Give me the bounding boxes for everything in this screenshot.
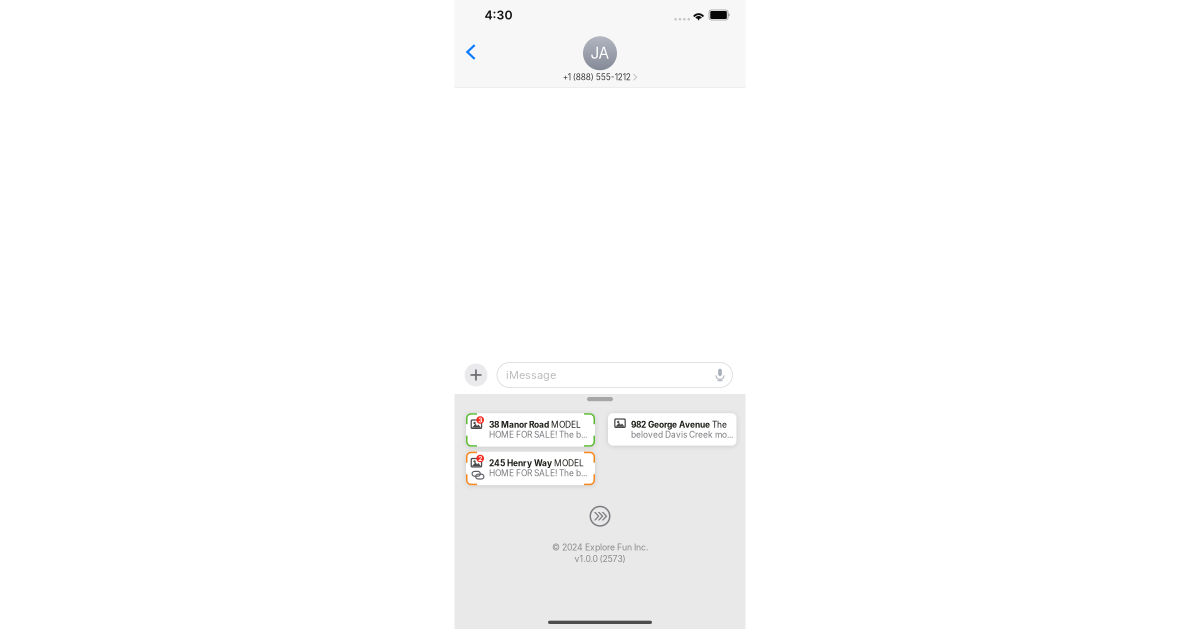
staticText: 38 Manor Road MODEL bbox=[489, 420, 581, 430]
staticText: 982 George Avenue The bbox=[631, 420, 727, 430]
button[interactable]: 3 bbox=[466, 413, 595, 447]
button[interactable]: Back bbox=[459, 30, 482, 59]
staticText: 2 bbox=[478, 454, 482, 463]
staticText: v1.0.0 (2573) bbox=[574, 554, 625, 564]
staticText: HOME FOR SALE! The b... bbox=[489, 468, 587, 478]
button[interactable]: +1 (888) 555-1212 bbox=[563, 73, 637, 82]
button[interactable]: Explore Fun bbox=[588, 505, 611, 528]
button[interactable]: iMessage bbox=[497, 362, 732, 387]
button[interactable]: 982 George Avenue The bbox=[608, 413, 736, 446]
staticText: HOME FOR SALE! The b... bbox=[489, 430, 587, 440]
staticText: beloved Davis Creek mo... bbox=[631, 430, 733, 440]
staticText: 245 Henry Way MODEL bbox=[489, 458, 584, 468]
staticText: iMessage bbox=[506, 368, 556, 382]
staticText: JA bbox=[590, 44, 609, 63]
staticText: +1 (888) 555-1212 bbox=[563, 72, 631, 82]
staticText: 3 bbox=[478, 416, 482, 424]
button[interactable]: Contact details bbox=[583, 36, 617, 70]
staticText: 4:30 bbox=[484, 8, 512, 22]
staticText: © 2024 Explore Fun Inc. bbox=[552, 542, 648, 553]
button[interactable]: 2 bbox=[466, 452, 595, 485]
button[interactable]: App drawer bbox=[464, 360, 487, 389]
